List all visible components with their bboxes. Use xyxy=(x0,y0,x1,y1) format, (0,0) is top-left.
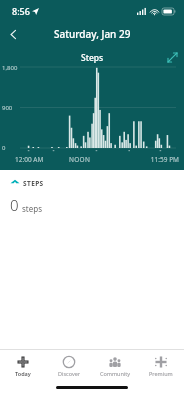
staticText: 900 xyxy=(2,104,13,112)
staticText: NOON xyxy=(69,155,124,164)
button[interactable]: Discover xyxy=(46,354,92,379)
staticText: Steps xyxy=(81,52,104,64)
staticText: 11:59 PM xyxy=(124,155,179,164)
staticText: 0 xyxy=(10,195,19,215)
button[interactable]: Back xyxy=(0,22,26,46)
staticText: STEPS xyxy=(23,179,44,188)
button[interactable]: Today xyxy=(0,354,46,379)
staticText: 0 xyxy=(2,144,6,152)
staticText: Community xyxy=(100,370,131,377)
staticText: steps xyxy=(22,203,42,214)
staticText: Today xyxy=(15,370,31,377)
staticText: 8:56 xyxy=(12,5,30,17)
staticText: 1,800 xyxy=(2,64,18,72)
button[interactable]: Community xyxy=(92,354,138,379)
staticText: 12:00 AM xyxy=(15,155,69,164)
button[interactable]: Premium xyxy=(138,354,184,379)
staticText: Discover xyxy=(58,370,81,377)
button[interactable]: Steps chart xyxy=(0,46,184,170)
button[interactable]: Expand chart xyxy=(164,49,180,65)
staticText: Premium xyxy=(149,370,173,377)
staticText: Saturday, Jan 29 xyxy=(54,27,131,41)
